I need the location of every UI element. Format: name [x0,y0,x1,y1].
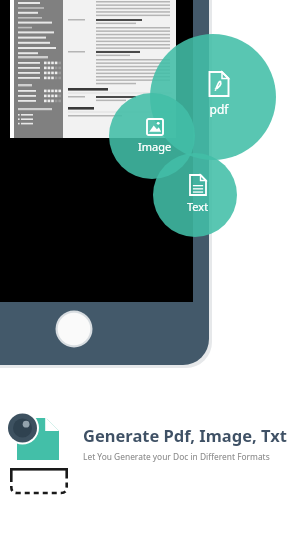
button[interactable]: Generate Pdf, Image, Txt scanner promo [0,0,300,533]
